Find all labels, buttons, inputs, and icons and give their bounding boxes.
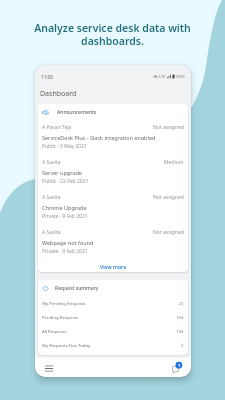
staticText: View more — [100, 263, 127, 270]
staticText: Webpage not found — [42, 239, 94, 246]
staticText: Pending Requests — [42, 314, 79, 320]
staticText: 1 — [178, 363, 181, 368]
button[interactable]: My Requests Due Today — [38, 338, 188, 352]
button[interactable]: A Pavan Teja — [38, 121, 188, 156]
staticText: My Pending Requests — [42, 300, 86, 306]
staticText: Chrome Upgrade — [42, 204, 87, 211]
staticText: Private · 9 Feb 2021 — [42, 213, 88, 220]
staticText: 2 — [181, 342, 184, 348]
button[interactable]: Chat — [167, 358, 184, 377]
staticText: Analyze service desk data with dashboard… — [20, 21, 205, 48]
staticText: A Pavan Teja — [42, 124, 72, 131]
staticText: 21 — [179, 300, 184, 306]
staticText: A Savita — [42, 194, 61, 201]
staticText: Medium — [164, 159, 184, 166]
button[interactable]: My Pending Requests — [38, 296, 188, 310]
staticText: Not assigned — [153, 124, 184, 131]
staticText: Server upgrade — [42, 169, 82, 176]
staticText: Public · 5 May 2021 — [42, 143, 87, 150]
staticText: Dashboard — [40, 89, 77, 99]
staticText: LTE — [159, 74, 166, 79]
staticText: My Requests Due Today — [42, 342, 91, 348]
staticText: 194 — [176, 328, 184, 334]
staticText: A Savita — [42, 159, 61, 166]
button[interactable]: A Savita — [38, 226, 188, 261]
staticText: All Requests — [42, 328, 67, 334]
staticText: Not assigned — [153, 229, 184, 236]
staticText: 100% — [175, 74, 186, 79]
button[interactable]: View more — [38, 261, 188, 272]
staticText: 164 — [176, 314, 184, 320]
staticText: Announcements — [57, 109, 97, 116]
button[interactable]: Menu — [42, 361, 56, 375]
staticText: Private · 9 Feb 2021 — [42, 248, 88, 255]
staticText: Not assigned — [153, 194, 184, 201]
staticText: Request summary — [55, 285, 99, 292]
staticText: Public · 22 Feb 2021 — [42, 178, 89, 185]
staticText: ServiceDesk Plus - Slack integration ena… — [42, 134, 156, 141]
staticText: A Savita — [42, 229, 61, 236]
button[interactable]: A Savita — [38, 156, 188, 191]
staticText: 11:00 — [41, 74, 53, 80]
button[interactable]: Pending Requests — [38, 310, 188, 324]
button[interactable]: A Savita — [38, 191, 188, 226]
button[interactable]: All Requests — [38, 324, 188, 338]
